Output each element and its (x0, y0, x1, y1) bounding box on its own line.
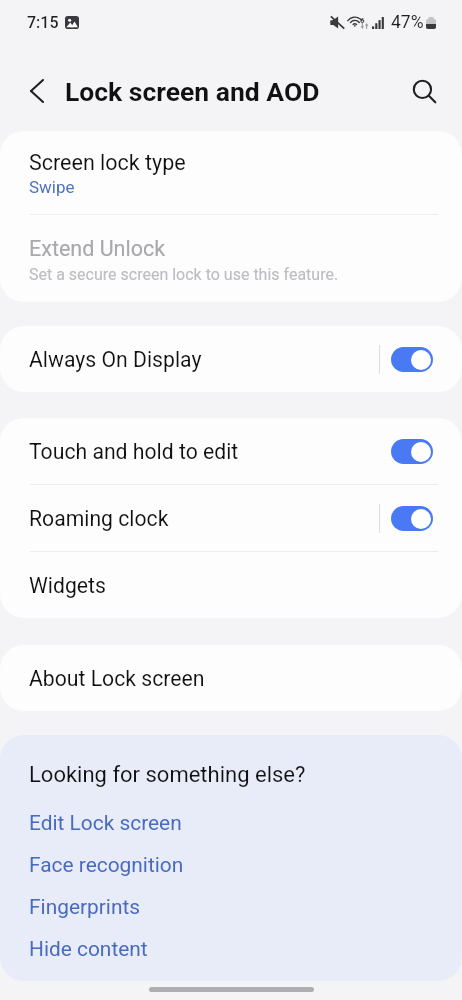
staticText: Screen lock type (29, 150, 186, 175)
staticText: Touch and hold to edit (29, 439, 391, 464)
staticText: Looking for something else? (29, 762, 306, 788)
button[interactable]: Back (15, 69, 59, 113)
button[interactable]: Extend Unlock (0, 215, 462, 302)
button[interactable]: Roaming clock (0, 485, 462, 551)
staticText: Lock screen and AOD (65, 76, 320, 107)
button[interactable]: Face recognition (29, 853, 184, 877)
staticText: 7:15 (27, 13, 59, 32)
button[interactable]: Screen lock type (0, 131, 462, 214)
staticText: Swipe (29, 177, 75, 197)
staticText: Extend Unlock (29, 236, 166, 261)
button[interactable]: Hide content (29, 937, 148, 961)
staticText: Roaming clock (29, 506, 379, 531)
staticText: Widgets (29, 573, 106, 598)
button[interactable] (391, 439, 433, 464)
staticText: About Lock screen (29, 666, 205, 691)
button[interactable]: Always On Display (0, 326, 462, 392)
button[interactable] (391, 506, 433, 531)
button[interactable]: Edit Lock screen (29, 811, 182, 835)
staticText: 6 (360, 16, 365, 25)
button[interactable]: Search (402, 69, 446, 113)
staticText: Set a secure screen lock to use this fea… (29, 265, 339, 284)
button[interactable]: Touch and hold to edit (0, 418, 462, 484)
staticText: Always On Display (29, 347, 379, 372)
button[interactable]: About Lock screen (0, 645, 462, 711)
button[interactable] (391, 347, 433, 372)
staticText: 47% (391, 12, 424, 33)
button[interactable]: Fingerprints (29, 895, 141, 919)
button[interactable]: Widgets (0, 552, 462, 618)
